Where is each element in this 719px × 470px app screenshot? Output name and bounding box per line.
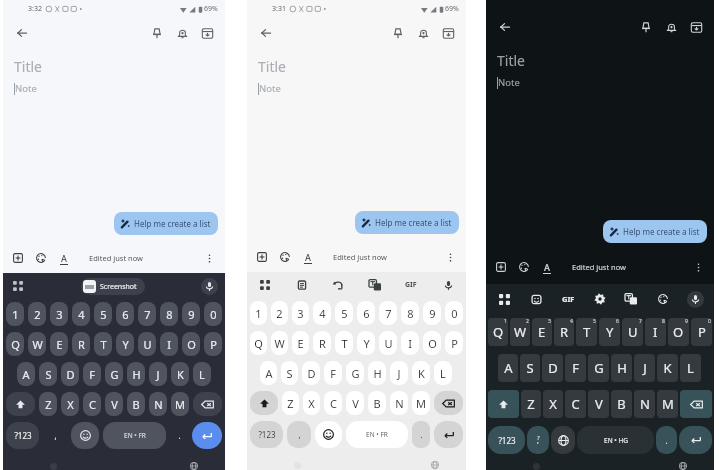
button[interactable]: 6 bbox=[116, 302, 134, 326]
button[interactable]: Translate bbox=[367, 277, 383, 293]
button[interactable]: Remind me bbox=[172, 23, 192, 43]
button[interactable]: I bbox=[160, 332, 178, 356]
button[interactable]: H bbox=[611, 354, 632, 382]
button[interactable]: E bbox=[532, 318, 552, 346]
button[interactable]: Backspace bbox=[680, 390, 712, 418]
button[interactable]: Remind me bbox=[661, 17, 681, 37]
button[interactable]: Formatting bbox=[56, 250, 72, 266]
button[interactable]: 3 bbox=[292, 301, 309, 325]
button[interactable]: Archive bbox=[686, 17, 706, 37]
button[interactable]: 8 bbox=[160, 302, 178, 326]
button[interactable]: W bbox=[271, 331, 288, 355]
button[interactable]: Settings bbox=[592, 291, 608, 307]
button[interactable]: Q bbox=[488, 318, 508, 346]
button[interactable]: R bbox=[313, 331, 331, 355]
button[interactable]: B bbox=[611, 390, 632, 418]
button[interactable]: L bbox=[434, 361, 452, 385]
button[interactable]: 8 bbox=[401, 301, 419, 325]
button[interactable]: 3 bbox=[50, 302, 68, 326]
button[interactable]: T bbox=[335, 331, 353, 355]
button[interactable]: . bbox=[170, 422, 188, 449]
button[interactable]: Toolbar bbox=[257, 277, 273, 293]
button[interactable]: 1 bbox=[6, 302, 24, 326]
button[interactable]: T bbox=[94, 332, 112, 356]
button[interactable]: Archive bbox=[438, 23, 458, 43]
button[interactable]: O bbox=[668, 318, 689, 346]
button[interactable]: Pin bbox=[636, 17, 656, 37]
button[interactable]: L bbox=[680, 354, 701, 382]
button[interactable]: H bbox=[368, 361, 386, 385]
button[interactable]: V bbox=[588, 390, 609, 418]
button[interactable]: Palette bbox=[516, 259, 532, 275]
button[interactable]: Screenshot bbox=[81, 278, 145, 295]
button[interactable]: Back bbox=[255, 22, 277, 44]
button[interactable]: Formatting bbox=[300, 249, 316, 265]
button[interactable]: EN • FR bbox=[346, 421, 408, 448]
button[interactable]: , bbox=[43, 422, 67, 449]
button[interactable]: ?123 bbox=[488, 426, 525, 454]
button[interactable]: O bbox=[423, 331, 441, 355]
button[interactable]: N bbox=[390, 391, 408, 415]
button[interactable]: K bbox=[412, 361, 430, 385]
button[interactable]: Backspace bbox=[434, 391, 463, 415]
button[interactable]: Voice input bbox=[440, 277, 456, 293]
button[interactable]: G bbox=[588, 354, 609, 382]
button[interactable]: Formatting bbox=[539, 259, 555, 275]
button[interactable]: 5 bbox=[335, 301, 353, 325]
button[interactable]: Z bbox=[39, 392, 57, 416]
button[interactable]: C bbox=[324, 391, 342, 415]
button[interactable]: M bbox=[171, 392, 189, 416]
button[interactable]: K bbox=[171, 362, 189, 386]
button[interactable]: U bbox=[622, 318, 643, 346]
button[interactable]: B bbox=[127, 392, 145, 416]
button[interactable]: Help me create a list bbox=[114, 212, 218, 235]
button[interactable]: Pin bbox=[388, 23, 408, 43]
button[interactable]: Add bbox=[493, 259, 509, 275]
button[interactable]: V bbox=[346, 391, 364, 415]
button[interactable]: 9 bbox=[423, 301, 441, 325]
button[interactable]: V bbox=[105, 392, 123, 416]
button[interactable]: EN • HG bbox=[577, 426, 654, 454]
button[interactable]: Remind me bbox=[413, 23, 433, 43]
button[interactable]: GIF bbox=[560, 291, 576, 307]
button[interactable]: More options bbox=[442, 249, 458, 265]
button[interactable]: Stickers bbox=[528, 291, 544, 307]
button[interactable]: Help me create a list bbox=[603, 220, 707, 243]
button[interactable]: D bbox=[61, 362, 79, 386]
button[interactable]: 1 bbox=[250, 301, 267, 325]
button[interactable]: X bbox=[303, 391, 320, 415]
button[interactable]: J bbox=[634, 354, 655, 382]
button[interactable]: Toolbar bbox=[10, 278, 26, 294]
button[interactable]: Q bbox=[6, 332, 24, 356]
button[interactable]: J bbox=[390, 361, 408, 385]
button[interactable]: F bbox=[324, 361, 342, 385]
button[interactable]: P bbox=[691, 318, 712, 346]
button[interactable]: 0 bbox=[204, 302, 222, 326]
button[interactable]: N bbox=[634, 390, 655, 418]
button[interactable]: Add bbox=[10, 250, 26, 266]
button[interactable]: B bbox=[368, 391, 386, 415]
button[interactable]: J bbox=[149, 362, 167, 386]
button[interactable]: Y bbox=[357, 331, 375, 355]
button[interactable]: 0 bbox=[445, 301, 463, 325]
button[interactable]: Undo bbox=[330, 277, 346, 293]
button[interactable]: Shift bbox=[6, 392, 35, 416]
button[interactable]: Q bbox=[250, 331, 267, 355]
button[interactable]: W bbox=[510, 318, 530, 346]
button[interactable]: Voice input bbox=[201, 278, 218, 295]
button[interactable]: Language bbox=[551, 426, 575, 454]
button[interactable]: F bbox=[83, 362, 101, 386]
button[interactable]: Add bbox=[254, 249, 270, 265]
button[interactable]: ?123 bbox=[250, 421, 283, 448]
button[interactable]: Shift bbox=[488, 390, 519, 418]
button[interactable]: P bbox=[445, 331, 463, 355]
button[interactable]: M bbox=[412, 391, 430, 415]
button[interactable]: 2 bbox=[271, 301, 288, 325]
button[interactable]: E bbox=[292, 331, 309, 355]
button[interactable]: D bbox=[542, 354, 563, 382]
button[interactable]: EN • FR bbox=[103, 422, 166, 449]
button[interactable]: A bbox=[498, 354, 518, 382]
button[interactable]: G bbox=[346, 361, 364, 385]
button[interactable]: H bbox=[127, 362, 145, 386]
button[interactable]: . bbox=[412, 421, 430, 448]
